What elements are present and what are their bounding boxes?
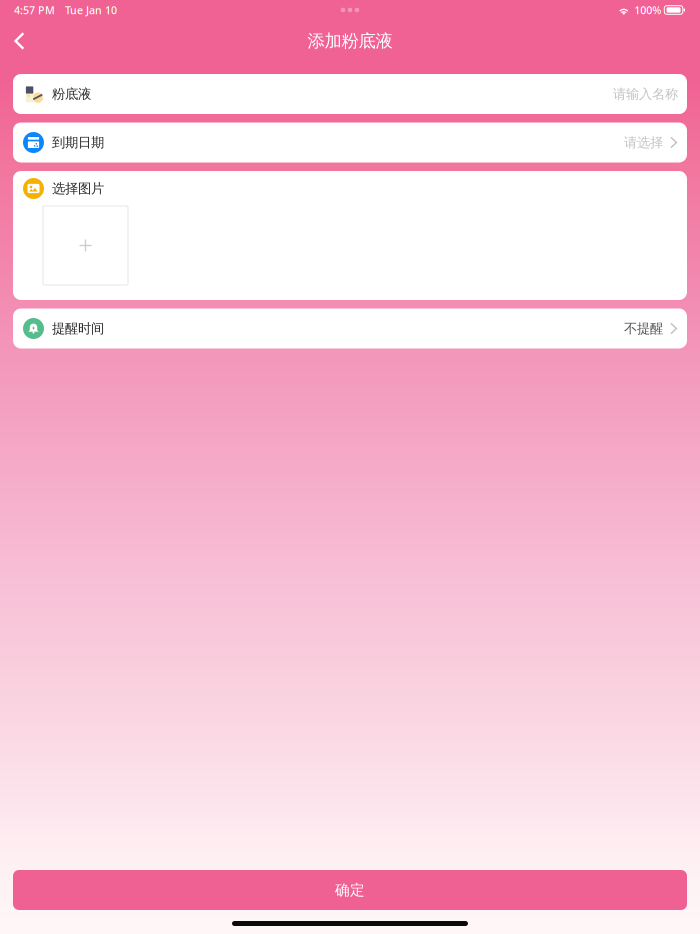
button[interactable]: 确定 (13, 870, 687, 910)
button[interactable]: Add photo (43, 206, 128, 285)
staticText: 不提醒 (624, 320, 663, 337)
button[interactable]: 提醒时间 (13, 308, 687, 348)
staticText: 选择图片 (52, 180, 104, 197)
staticText: 请输入名称 (613, 86, 678, 102)
button[interactable]: Back (0, 22, 38, 60)
staticText: 确定 (335, 881, 365, 899)
staticText: 添加粉底液 (307, 30, 392, 52)
staticText: 请选择 (624, 134, 663, 151)
button[interactable]: 到期日期 (13, 122, 687, 162)
staticText: 提醒时间 (52, 320, 104, 337)
staticText: 4:57 PM (14, 3, 55, 17)
button[interactable]: 粉底液 (13, 74, 687, 114)
staticText: 到期日期 (52, 134, 104, 151)
staticText: 粉底液 (52, 86, 91, 102)
staticText: Tue Jan 10 (65, 3, 117, 17)
staticText: 100% (634, 3, 661, 17)
